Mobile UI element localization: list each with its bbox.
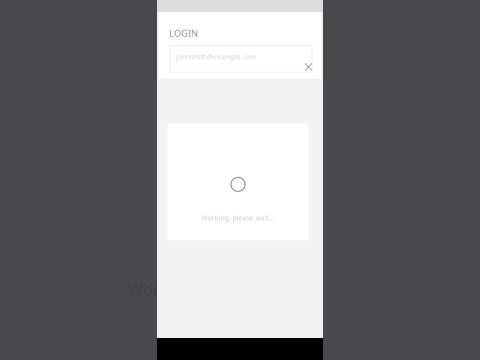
staticText: johnsmith@example.com bbox=[176, 52, 256, 61]
button[interactable]: Clear text bbox=[299, 57, 312, 72]
staticText: Working, please wait... bbox=[201, 213, 274, 222]
staticText: Working, please wait... bbox=[128, 279, 298, 300]
staticText: LOGIN bbox=[169, 27, 198, 39]
